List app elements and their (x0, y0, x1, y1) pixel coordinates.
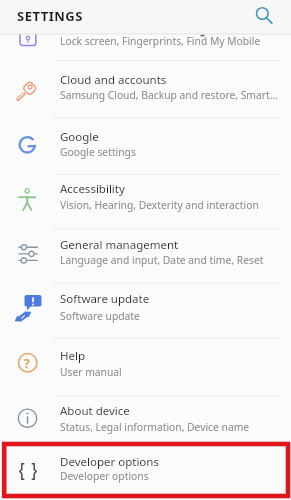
staticText: Status, Legal information, Device name (60, 420, 250, 434)
staticText: Google settings (60, 145, 136, 159)
staticText: Google (60, 129, 99, 145)
staticText: Software update (60, 291, 150, 307)
button[interactable]: Lock screen, Fingerprints, Find My Mobil… (0, 34, 291, 61)
button[interactable]: Help (0, 339, 291, 397)
staticText: User manual (60, 365, 122, 379)
staticText: Software update (60, 309, 140, 323)
staticText: Accessibility (60, 181, 125, 197)
staticText: Developer options (60, 469, 149, 483)
staticText: ? (24, 355, 30, 371)
staticText: About device (60, 403, 130, 419)
button[interactable]: About device (0, 396, 291, 441)
staticText: Help (60, 348, 86, 364)
staticText: Language and input, Date and time, Reset (60, 253, 264, 267)
button[interactable]: Software update (0, 283, 291, 339)
staticText: Developer options (60, 454, 159, 470)
staticText: General management (60, 237, 179, 253)
button[interactable]: Accessibility (0, 175, 291, 230)
button[interactable]: Developer options (0, 444, 291, 500)
staticText: Vision, Hearing, Dexterity and interacti… (60, 198, 259, 212)
button[interactable]: Google (0, 118, 291, 175)
button[interactable] (250, 2, 278, 30)
staticText: Samsung Cloud, Backup and restore, Smart… (60, 88, 279, 102)
button[interactable]: Cloud and accounts (0, 61, 291, 118)
button[interactable]: General management (0, 229, 291, 283)
staticText: Lock screen, Fingerprints, Find My Mobil… (60, 34, 261, 48)
staticText: Cloud and accounts (60, 72, 167, 88)
staticText: SETTINGS (17, 7, 83, 25)
